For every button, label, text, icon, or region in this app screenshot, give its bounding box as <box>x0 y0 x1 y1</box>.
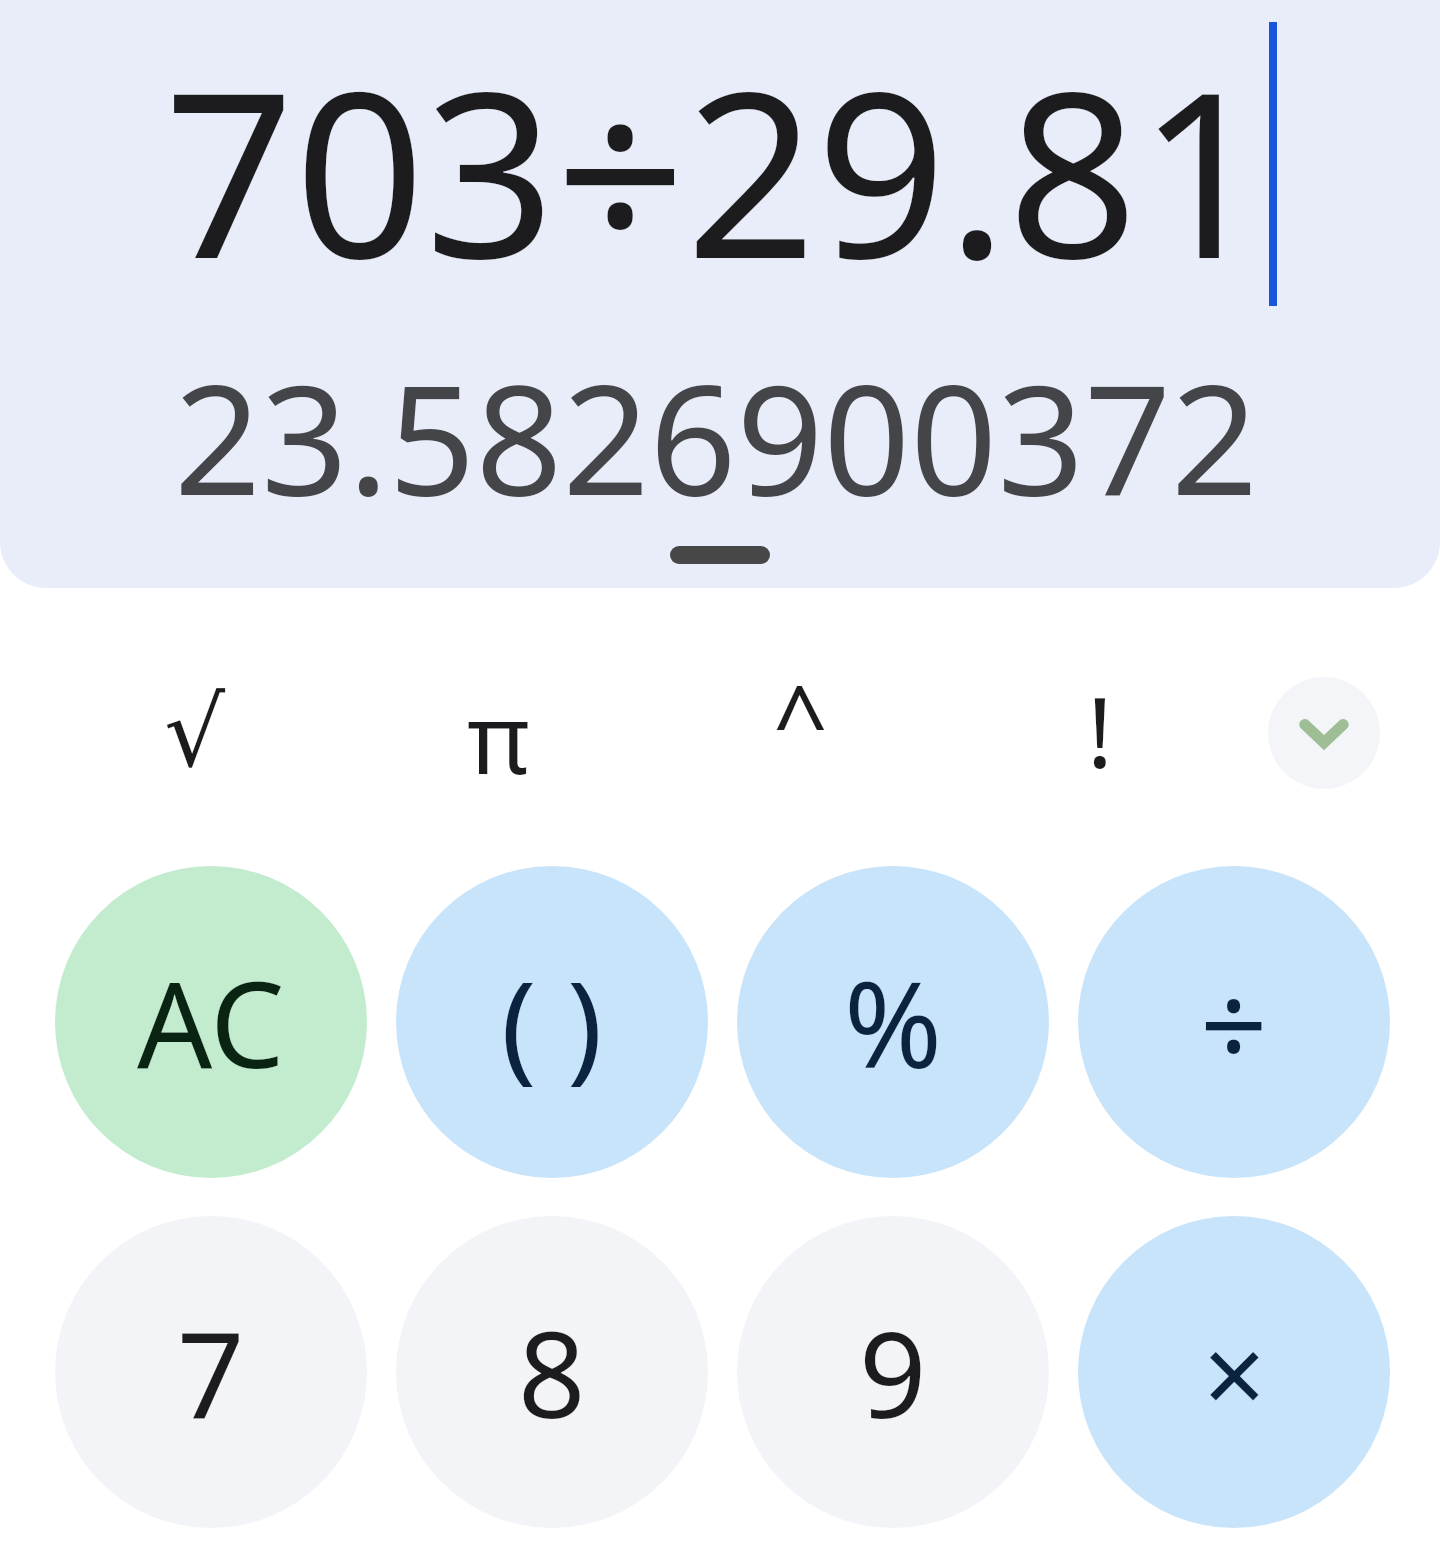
staticText: 703÷29.81 <box>164 14 1269 325</box>
button[interactable]: 9 <box>737 1216 1049 1528</box>
button[interactable]: % <box>737 866 1049 1178</box>
staticText: 9 <box>859 1292 927 1453</box>
staticText: ! <box>1087 665 1113 796</box>
button[interactable]: AC <box>55 866 367 1178</box>
staticText: ^ <box>773 653 828 784</box>
button[interactable]: ^ <box>725 643 875 793</box>
button[interactable]: √ <box>120 658 270 808</box>
button[interactable]: 8 <box>396 1216 708 1528</box>
button[interactable]: 7 <box>55 1216 367 1528</box>
staticText: 23.5826900372 <box>174 333 1259 540</box>
staticText: AC <box>137 942 285 1103</box>
staticText: % <box>844 942 943 1103</box>
staticText: × <box>1203 1297 1266 1447</box>
staticText: π <box>467 671 530 802</box>
staticText: 7 <box>177 1292 245 1453</box>
staticText: ( ) <box>501 942 603 1103</box>
staticText: ÷ <box>1200 942 1268 1103</box>
button[interactable]: ( ) <box>396 866 708 1178</box>
button[interactable]: × <box>1078 1216 1390 1528</box>
button[interactable]: ÷ <box>1078 866 1390 1178</box>
button[interactable]: Show more functions <box>1268 677 1380 789</box>
button[interactable]: ! <box>1025 655 1175 805</box>
button[interactable]: 703÷29.81 <box>0 0 1440 588</box>
staticText: √ <box>164 677 226 789</box>
staticText: 8 <box>518 1292 586 1453</box>
button[interactable]: π <box>423 661 573 811</box>
